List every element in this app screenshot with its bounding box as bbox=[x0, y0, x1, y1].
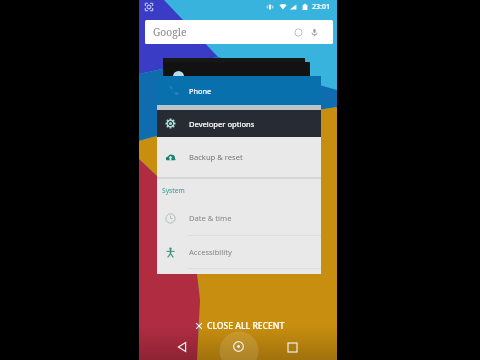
button[interactable]: Date & time bbox=[157, 201, 321, 235]
staticText: Developer options bbox=[189, 119, 255, 129]
button[interactable]: Phone bbox=[157, 76, 321, 105]
staticText: Phone bbox=[189, 86, 212, 96]
staticText: 23:01 bbox=[312, 2, 330, 12]
button[interactable]: Google bbox=[145, 20, 333, 44]
button[interactable]: Back bbox=[169, 334, 195, 360]
button[interactable]: Accessibility bbox=[157, 236, 321, 268]
button[interactable]: Home bbox=[225, 333, 251, 359]
staticText: Backup & reset bbox=[189, 152, 243, 162]
button[interactable]: Search by image bbox=[294, 28, 303, 37]
staticText: CLOSE ALL RECENT bbox=[207, 320, 285, 332]
staticText: Google bbox=[153, 25, 187, 39]
other: Screen recorder bbox=[144, 2, 154, 12]
staticText: System bbox=[162, 186, 185, 195]
staticText: Accessibility bbox=[189, 247, 232, 257]
button[interactable]: Recent apps bbox=[279, 334, 305, 360]
button[interactable]: Developer options bbox=[157, 110, 321, 137]
button[interactable]: Voice search bbox=[310, 28, 319, 37]
button[interactable]: CLOSE ALL RECENT bbox=[195, 319, 285, 333]
staticText: Date & time bbox=[189, 213, 232, 223]
button[interactable]: Backup & reset bbox=[157, 137, 321, 177]
